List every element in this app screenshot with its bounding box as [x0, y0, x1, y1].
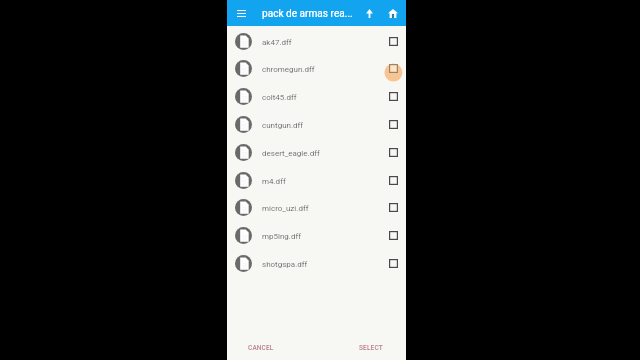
button[interactable]: micro_uzi.dff	[227, 193, 406, 221]
button[interactable]: Select desert_eagle.dff	[383, 142, 403, 162]
staticText: m4.dff	[262, 177, 383, 186]
button[interactable]: Select mp5lng.dff	[383, 225, 403, 245]
staticText: pack de armas rea...	[262, 8, 353, 20]
button[interactable]: Menu	[229, 1, 253, 25]
staticText: SELECT	[359, 344, 383, 352]
button[interactable]: Home	[382, 2, 404, 24]
button[interactable]: Select chromegun.dff	[383, 58, 403, 78]
staticText: shotgspa.dff	[262, 260, 383, 269]
staticText: colt45.dff	[262, 93, 383, 102]
button[interactable]: colt45.dff	[227, 82, 406, 110]
button[interactable]: chromegun.dff	[227, 54, 406, 82]
button[interactable]: ak47.dff	[227, 27, 406, 55]
button[interactable]: shotgspa.dff	[227, 249, 406, 277]
staticText: chromegun.dff	[262, 65, 383, 74]
button[interactable]: SELECT	[356, 341, 386, 355]
button[interactable]: cuntgun.dff	[227, 110, 406, 138]
button[interactable]: Select m4.dff	[383, 170, 403, 190]
staticText: ak47.dff	[262, 38, 383, 47]
button[interactable]: Select ak47.dff	[383, 31, 403, 51]
button[interactable]: Select cuntgun.dff	[383, 114, 403, 134]
button[interactable]: Go up one folder	[358, 2, 380, 24]
staticText: desert_eagle.dff	[262, 149, 383, 158]
button[interactable]: desert_eagle.dff	[227, 138, 406, 166]
staticText: CANCEL	[248, 344, 274, 352]
button[interactable]: Select shotgspa.dff	[383, 253, 403, 273]
button[interactable]: CANCEL	[245, 341, 277, 355]
button[interactable]: Select micro_uzi.dff	[383, 197, 403, 217]
staticText: cuntgun.dff	[262, 121, 383, 130]
staticText: mp5lng.dff	[262, 232, 383, 241]
button[interactable]: Select colt45.dff	[383, 86, 403, 106]
button[interactable]: mp5lng.dff	[227, 221, 406, 249]
button[interactable]: m4.dff	[227, 166, 406, 194]
staticText: micro_uzi.dff	[262, 204, 383, 213]
